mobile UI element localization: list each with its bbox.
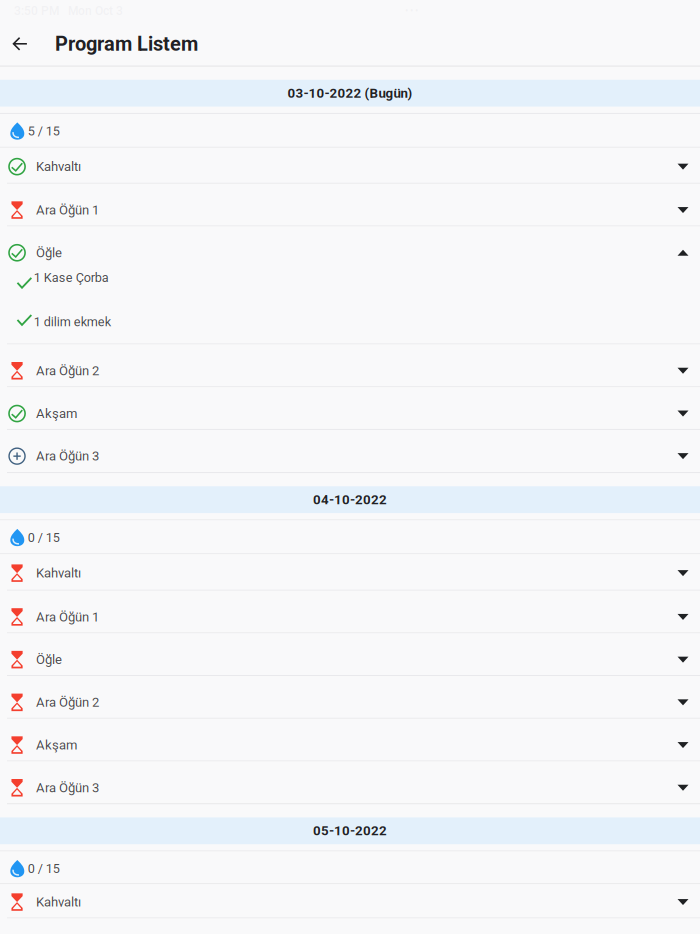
staticText: 0 / 15 bbox=[28, 530, 60, 545]
button[interactable]: Ara Öğün 1 bbox=[0, 184, 700, 226]
button[interactable]: Akşam bbox=[0, 387, 700, 430]
button[interactable]: Ara Öğün 2 bbox=[0, 676, 700, 719]
staticText: Kahvaltı bbox=[36, 894, 81, 910]
staticText: 1 dilim ekmek bbox=[34, 315, 111, 329]
staticText: Akşam bbox=[36, 737, 77, 753]
staticText: 1 Kase Çorba bbox=[34, 270, 109, 285]
staticText: Ara Öğün 1 bbox=[36, 609, 99, 625]
staticText: Kahvaltı bbox=[36, 159, 81, 174]
staticText: Ara Öğün 2 bbox=[36, 695, 99, 710]
button[interactable]: 0 / 15 bbox=[0, 851, 700, 884]
button[interactable]: Ara Öğün 3 bbox=[0, 761, 700, 804]
button[interactable]: 5 / 15 bbox=[0, 114, 700, 148]
staticText: Öğle bbox=[36, 652, 62, 667]
button[interactable]: Ara Öğün 3 bbox=[0, 430, 700, 473]
staticText: 03-10-2022 (Bugün) bbox=[287, 85, 412, 101]
staticText: 0 / 15 bbox=[28, 861, 60, 876]
button[interactable]: Kahvaltı bbox=[0, 148, 700, 184]
button[interactable]: Öğle bbox=[0, 633, 700, 676]
button[interactable]: Ara Öğün 2 bbox=[0, 344, 700, 387]
staticText: 5 / 15 bbox=[28, 124, 60, 138]
button[interactable]: Back bbox=[0, 22, 40, 66]
staticText: Akşam bbox=[36, 406, 77, 421]
button[interactable]: Kahvaltı bbox=[0, 884, 700, 918]
staticText: Kahvaltı bbox=[36, 565, 81, 581]
staticText: 05-10-2022 bbox=[313, 823, 387, 839]
button[interactable]: Kahvaltı bbox=[0, 554, 700, 591]
staticText: 04-10-2022 bbox=[313, 492, 387, 507]
staticText: Ara Öğün 3 bbox=[36, 780, 99, 795]
staticText: Ara Öğün 3 bbox=[36, 448, 99, 464]
staticText: Ara Öğün 2 bbox=[36, 363, 99, 378]
staticText: Ara Öğün 1 bbox=[36, 202, 99, 218]
button[interactable]: 0 / 15 bbox=[0, 520, 700, 554]
button[interactable]: Akşam bbox=[0, 719, 700, 761]
staticText: Program Listem bbox=[55, 32, 198, 55]
staticText: Öğle bbox=[36, 245, 62, 260]
button[interactable]: Ara Öğün 1 bbox=[0, 591, 700, 633]
button[interactable]: Öğle bbox=[0, 226, 700, 262]
